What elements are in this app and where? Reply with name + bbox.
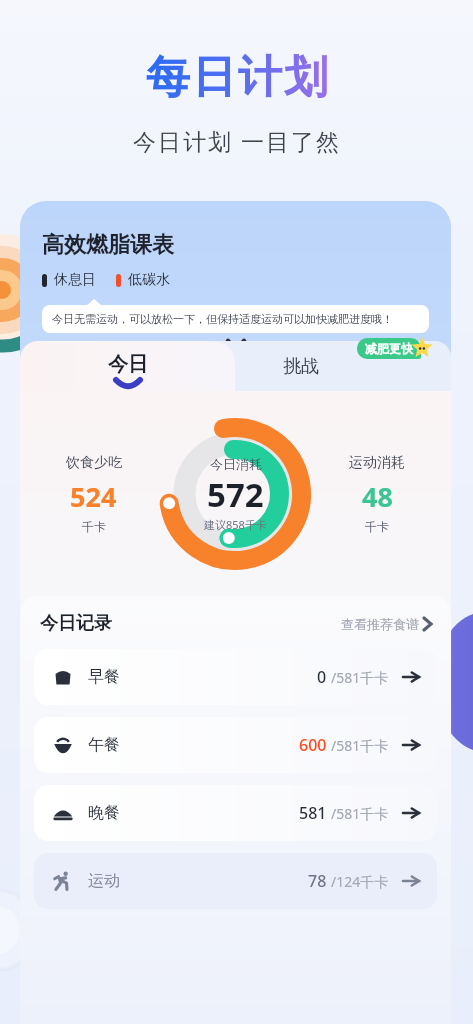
other: 查看运动 [403, 873, 419, 889]
staticText: 78 [308, 870, 327, 892]
staticText: 饮食少吃 [66, 454, 122, 472]
staticText: 524 [70, 478, 117, 515]
staticText: 48 [362, 478, 393, 515]
staticText: 运动 [88, 871, 120, 891]
staticText: 今日记录 [40, 612, 112, 635]
staticText: 查看推荐食谱 [341, 616, 419, 632]
button[interactable]: 晚餐 [34, 785, 437, 841]
staticText: /581千卡 [331, 804, 389, 823]
staticText: 今日消耗 [210, 456, 262, 472]
staticText: 减肥更快 [365, 341, 413, 356]
staticText: 高效燃脂课表 [42, 231, 174, 259]
button[interactable]: 查看推荐食谱 [341, 616, 431, 632]
staticText: 建议858千卡 [204, 517, 267, 532]
staticText: 挑战 [283, 355, 319, 378]
button[interactable]: 午餐 [34, 717, 437, 773]
other: 查看早餐 [403, 669, 419, 685]
staticText: 早餐 [88, 667, 120, 687]
button[interactable]: 今日 [20, 341, 235, 391]
staticText: 今日 [108, 352, 148, 377]
staticText: /581千卡 [331, 736, 389, 755]
staticText: 千卡 [82, 519, 106, 534]
staticText: 581 [299, 802, 327, 824]
staticText: 晚餐 [88, 803, 120, 823]
other: 查看晚餐 [403, 805, 419, 821]
staticText: 今日计划 一目了然 [133, 125, 341, 156]
staticText: 休息日 [54, 271, 96, 289]
staticText: 今日无需运动，可以放松一下，但保持适度运动可以加快减肥进度哦！ [52, 312, 393, 326]
button[interactable]: 挑战 [150, 341, 451, 391]
staticText: 572 [207, 472, 264, 517]
staticText: /581千卡 [331, 668, 389, 687]
staticText: 低碳水 [128, 271, 170, 289]
staticText: 600 [299, 734, 327, 756]
staticText: /124千卡 [331, 872, 389, 891]
staticText: 每日计划 [145, 50, 329, 105]
button[interactable]: 早餐 [34, 649, 437, 705]
staticText: 0 [317, 666, 327, 688]
staticText: 运动消耗 [349, 454, 405, 472]
staticText: 千卡 [365, 519, 389, 534]
button[interactable]: 运动 [34, 853, 437, 909]
other: 查看午餐 [403, 737, 419, 753]
staticText: 午餐 [88, 735, 120, 755]
